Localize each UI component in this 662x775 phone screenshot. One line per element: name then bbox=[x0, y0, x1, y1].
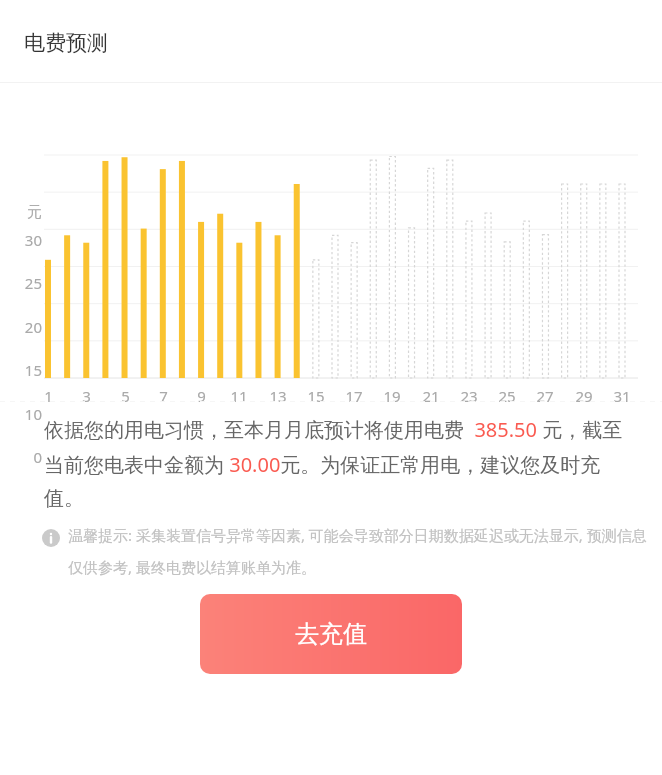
staticText: 元 bbox=[27, 203, 42, 222]
staticText: 25 bbox=[24, 273, 42, 293]
staticText: 25 bbox=[498, 386, 516, 406]
staticText: 0 bbox=[33, 447, 42, 467]
staticText: 7 bbox=[159, 386, 168, 406]
staticText: 21 bbox=[422, 386, 440, 406]
staticText: 13 bbox=[269, 386, 287, 406]
staticText: 15 bbox=[307, 386, 325, 406]
button[interactable]: 去充值 bbox=[200, 594, 462, 674]
staticText: 27 bbox=[536, 386, 554, 406]
staticText: 温馨提示: 采集装置信号异常等因素, 可能会导致部分日期数据延迟或无法显示, 预… bbox=[68, 525, 650, 578]
staticText: 15 bbox=[24, 360, 42, 380]
staticText: 5 bbox=[121, 386, 130, 406]
staticText: 1 bbox=[44, 386, 53, 406]
staticText: 19 bbox=[383, 386, 401, 406]
staticText: 依据您的用电习惯，至本月月底预计将使用电费 385.50 元，截至当前您电表中金… bbox=[44, 416, 640, 511]
staticText: 11 bbox=[230, 386, 248, 406]
staticText: 去充值 bbox=[295, 619, 367, 649]
staticText: 30 bbox=[24, 230, 42, 250]
staticText: 23 bbox=[460, 386, 478, 406]
staticText: 9 bbox=[197, 386, 206, 406]
staticText: 10 bbox=[24, 404, 42, 424]
staticText: 3 bbox=[82, 386, 91, 406]
staticText: 31 bbox=[613, 386, 631, 406]
staticText: 20 bbox=[24, 317, 42, 337]
staticText: 17 bbox=[345, 386, 363, 406]
staticText: 29 bbox=[575, 386, 593, 406]
staticText: 电费预测 bbox=[24, 30, 108, 56]
